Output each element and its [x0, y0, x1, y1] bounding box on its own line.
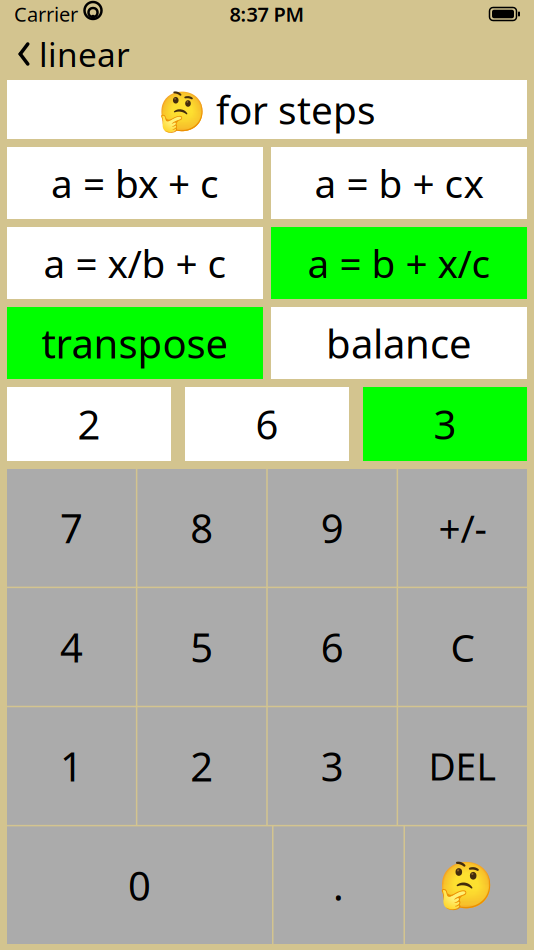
staticText: 0 — [128, 859, 151, 912]
button[interactable]: 🤔 for steps — [7, 80, 527, 139]
button[interactable]: 3 — [363, 387, 527, 461]
button[interactable]: C — [398, 588, 527, 706]
button[interactable]: 0 — [7, 826, 272, 944]
staticText: Carrier — [14, 1, 78, 27]
button[interactable]: transpose — [7, 307, 263, 379]
button[interactable]: 6 — [268, 588, 397, 706]
staticText: DEL — [429, 741, 497, 791]
button[interactable]: 🤔 — [405, 826, 527, 944]
staticText: +/- — [439, 502, 487, 553]
staticText: 2 — [190, 739, 213, 793]
staticText: linear — [39, 32, 130, 76]
staticText: 3 — [433, 397, 456, 450]
staticText: 9 — [321, 501, 344, 554]
button[interactable]: 3 — [268, 707, 397, 825]
staticText: 6 — [255, 397, 278, 450]
button[interactable]: a = bx + c — [7, 147, 263, 219]
button[interactable]: DEL — [398, 707, 527, 825]
button[interactable]: 6 — [185, 387, 349, 461]
staticText: 4 — [60, 620, 83, 673]
button[interactable]: 5 — [137, 588, 266, 706]
staticText: 8 — [190, 501, 213, 554]
staticText: 8:37 PM — [229, 1, 304, 27]
staticText: . — [333, 859, 344, 912]
button[interactable]: balance — [271, 307, 527, 379]
button[interactable]: Back to linear — [0, 29, 142, 79]
staticText: 5 — [190, 620, 213, 673]
staticText: a = b + x/c — [307, 237, 490, 289]
button[interactable]: 1 — [7, 707, 136, 825]
staticText: 3 — [321, 739, 344, 793]
button[interactable]: 2 — [137, 707, 266, 825]
staticText: a = b + cx — [314, 157, 483, 209]
button[interactable]: 4 — [7, 588, 136, 706]
staticText: C — [451, 621, 475, 673]
button[interactable]: a = x/b + c — [7, 227, 263, 299]
staticText: balance — [326, 316, 472, 369]
button[interactable]: . — [273, 826, 403, 944]
staticText: 1 — [60, 739, 83, 793]
staticText: 🤔 for steps — [158, 84, 376, 135]
staticText: a = bx + c — [51, 157, 219, 209]
button[interactable]: 2 — [7, 387, 171, 461]
staticText: 🤔 — [438, 859, 494, 911]
button[interactable]: 9 — [268, 469, 397, 587]
staticText: 7 — [60, 501, 83, 554]
staticText: a = x/b + c — [43, 237, 226, 289]
button[interactable]: 7 — [7, 469, 136, 587]
staticText: transpose — [41, 316, 228, 369]
button[interactable]: a = b + cx — [271, 147, 527, 219]
button[interactable]: 8 — [137, 469, 266, 587]
button[interactable]: a = b + x/c — [271, 227, 527, 299]
button[interactable]: +/- — [398, 469, 527, 587]
staticText: 6 — [321, 620, 344, 673]
staticText: 2 — [77, 397, 100, 450]
